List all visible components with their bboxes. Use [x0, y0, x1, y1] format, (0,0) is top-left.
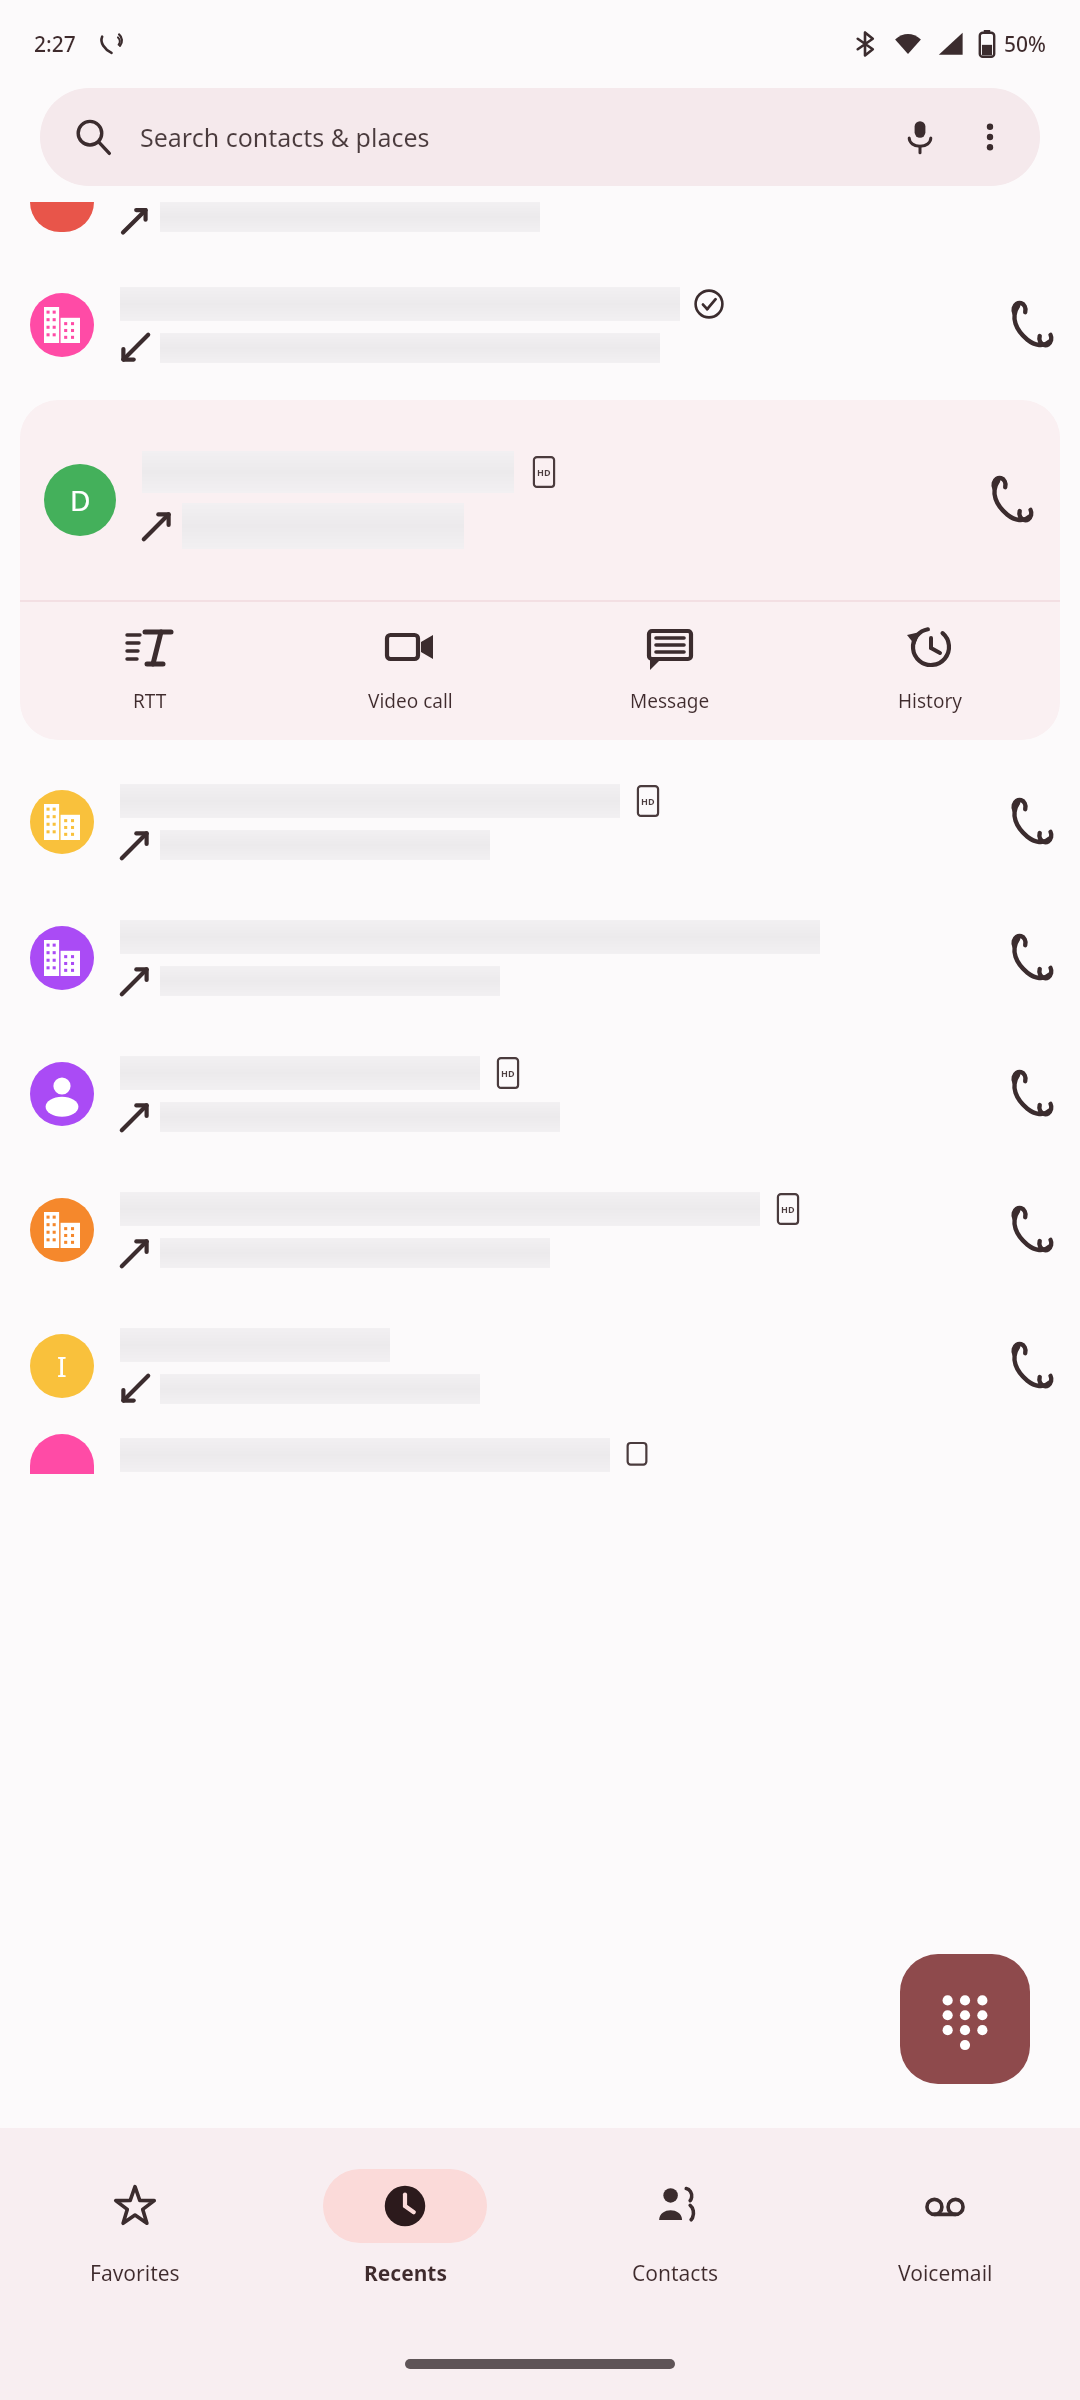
staticText: Search contacts & places — [140, 120, 430, 154]
button[interactable]: More options — [958, 105, 1022, 169]
button[interactable]: Open dialpad — [900, 1954, 1030, 2084]
button[interactable]: Voicemail — [810, 2169, 1080, 2288]
button[interactable]: Call — [984, 1318, 1080, 1414]
staticText: HD — [537, 466, 551, 478]
button[interactable]: Call — [984, 277, 1080, 373]
staticText: I — [57, 1347, 67, 1385]
button[interactable]: HD — [0, 1162, 1080, 1298]
button[interactable]: Call — [984, 1182, 1080, 1278]
button[interactable]: Call — [984, 774, 1080, 870]
staticText: 2:27 — [34, 30, 76, 59]
staticText: RTT — [133, 688, 167, 714]
staticText: Video call — [368, 688, 453, 714]
button[interactable]: Call — [984, 910, 1080, 1006]
button[interactable]: Message — [540, 608, 800, 728]
button[interactable]: I — [0, 1298, 1080, 1434]
staticText: Voicemail — [898, 2259, 993, 2288]
staticText: History — [898, 688, 962, 714]
staticText: HD — [501, 1067, 515, 1079]
staticText: Favorites — [90, 2259, 180, 2288]
staticText: Recents — [364, 2259, 447, 2288]
button[interactable]: History — [800, 608, 1060, 728]
staticText: HD — [641, 795, 655, 807]
staticText: Message — [630, 688, 710, 714]
button[interactable]: Call — [964, 452, 1060, 548]
staticText: 50% — [1004, 30, 1046, 59]
button[interactable]: Call — [984, 1046, 1080, 1142]
staticText: Contacts — [632, 2259, 719, 2288]
button[interactable]: Voice search — [888, 105, 952, 169]
button[interactable]: HD — [0, 754, 1080, 890]
button[interactable]: Call — [0, 890, 1080, 1026]
button[interactable]: Recents — [270, 2169, 540, 2288]
button[interactable]: Search contacts & places — [40, 88, 1040, 186]
button[interactable]: Video call — [280, 608, 540, 728]
button[interactable]: Favorites — [0, 2169, 270, 2288]
button[interactable]: RTT — [20, 608, 280, 728]
staticText: HD — [781, 1203, 795, 1215]
button[interactable]: D — [20, 400, 1060, 600]
staticText: D — [70, 481, 91, 519]
button[interactable]: Contacts — [540, 2169, 810, 2288]
button[interactable]: Call — [0, 250, 1080, 400]
button[interactable]: HD — [0, 1026, 1080, 1162]
